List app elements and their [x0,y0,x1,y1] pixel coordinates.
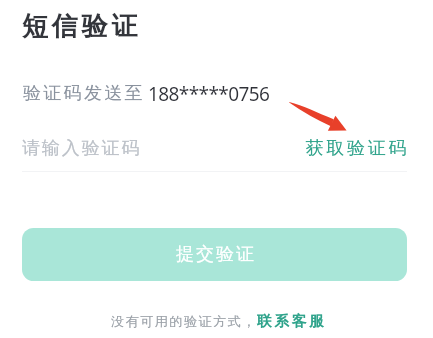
staticText: 188*****0756 [148,81,270,107]
staticText: 短信验证 [22,10,142,43]
other: Annotation arrow pointing to get code [288,100,348,133]
staticText: 联系客服 [257,312,327,330]
staticText: 获取验证码 [304,137,408,160]
button[interactable]: 获取验证码 [302,131,408,165]
button[interactable]: 请输入验证码 [22,131,406,165]
button[interactable]: 提交验证 [22,228,407,281]
staticText: 提交验证 [175,243,255,266]
staticText: 没有可用的验证方式， [111,313,257,330]
staticText: 请输入验证码 [22,137,142,160]
button[interactable]: 联系客服 [257,311,327,331]
staticText: 验证码发送至 [23,82,145,105]
